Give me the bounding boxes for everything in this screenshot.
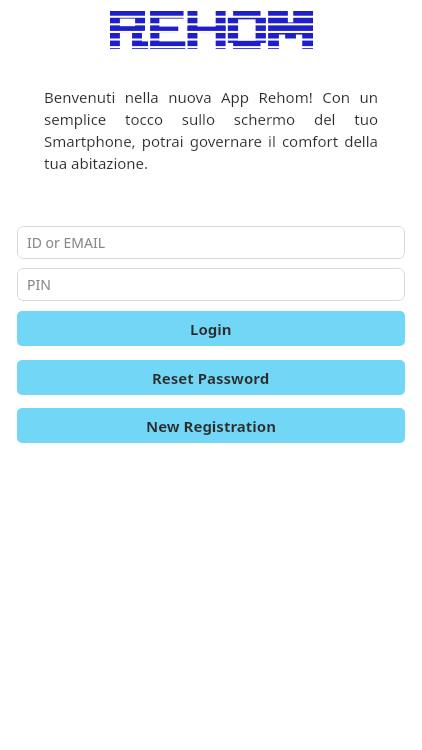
button[interactable]: ID or EMAIL — [17, 226, 405, 259]
staticText: Benvenuti nella nuova App Rehom! Con un … — [44, 87, 378, 174]
staticText: New Registration — [146, 416, 276, 436]
button[interactable]: Login — [17, 311, 405, 346]
button[interactable]: Reset Password — [17, 360, 405, 395]
staticText: PIN — [27, 275, 51, 294]
button[interactable]: New Registration — [17, 408, 405, 443]
other: Rehom logo — [110, 11, 313, 49]
staticText: ID or EMAIL — [27, 233, 106, 252]
button[interactable]: PIN — [17, 268, 405, 301]
staticText: Reset Password — [152, 368, 270, 388]
staticText: Login — [190, 319, 232, 339]
